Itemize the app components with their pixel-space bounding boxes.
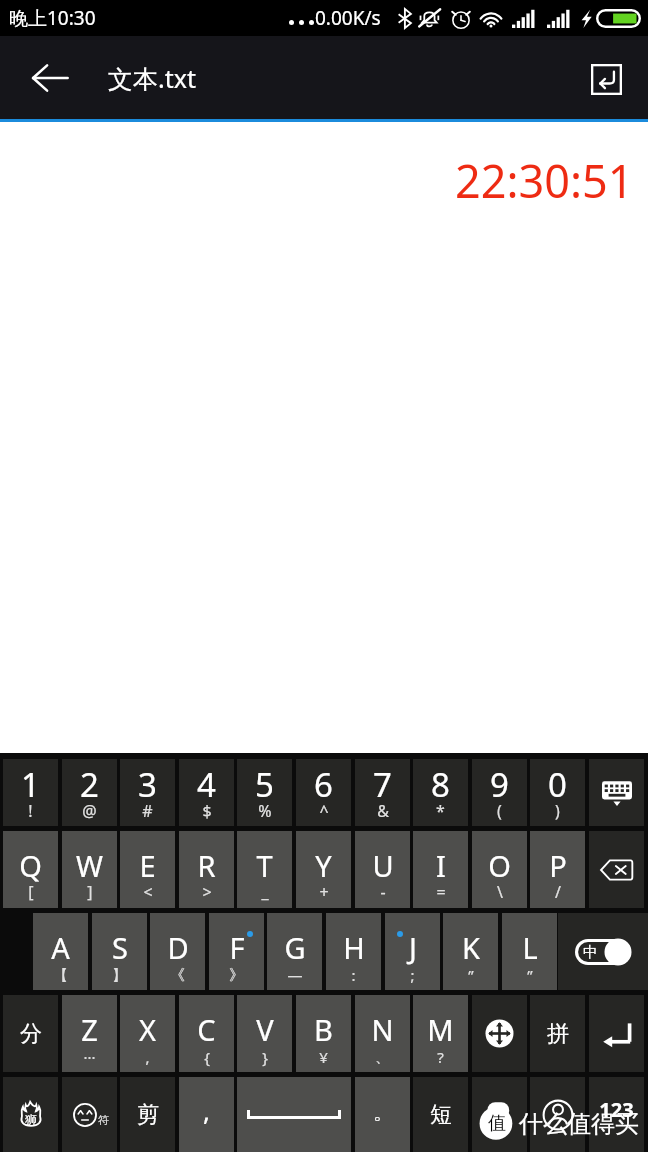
button[interactable]: 1 (3, 759, 58, 826)
button[interactable]: 分 (3, 995, 58, 1072)
staticText: 123 (599, 1096, 634, 1123)
staticText: N (371, 1010, 394, 1049)
staticText: Z (81, 1010, 98, 1049)
button[interactable]: Switch language (558, 913, 648, 990)
staticText: & (377, 800, 389, 822)
staticText: , (145, 1047, 150, 1067)
button[interactable]: Z (62, 995, 117, 1072)
button[interactable]: F (209, 913, 264, 990)
button[interactable]: 123 (589, 1077, 644, 1152)
staticText: : (351, 965, 356, 985)
button[interactable]: Emoji (62, 1077, 117, 1152)
button[interactable]: S (92, 913, 147, 990)
staticText: 3 (138, 762, 157, 807)
button[interactable]: O (472, 831, 527, 908)
staticText: 中 (583, 943, 598, 962)
staticText: ] (87, 881, 93, 903)
staticText: , (203, 1093, 210, 1128)
button[interactable]: Q (3, 831, 58, 908)
button[interactable]: Move cursor (472, 995, 527, 1072)
staticText: B (314, 1010, 333, 1049)
staticText: O (488, 846, 511, 885)
button[interactable]: U (355, 831, 410, 908)
button[interactable]: T (237, 831, 292, 908)
button[interactable]: Enter (589, 995, 644, 1072)
staticText: % (258, 800, 272, 822)
staticText: > (202, 881, 212, 903)
button[interactable]: N (355, 995, 410, 1072)
button[interactable] (472, 1077, 527, 1152)
button[interactable]: K (443, 913, 498, 990)
staticText: 剪 (137, 1101, 159, 1129)
staticText: 狮 (25, 1112, 37, 1127)
staticText: Q (19, 846, 42, 885)
staticText: { (204, 1047, 210, 1067)
staticText: 2 (80, 762, 99, 807)
button[interactable]: 3 (120, 759, 175, 826)
button[interactable]: 6 (296, 759, 351, 826)
button[interactable]: Theme (3, 1077, 58, 1152)
button[interactable]: J (385, 913, 440, 990)
button[interactable]: 5 (237, 759, 292, 826)
button[interactable]: I (413, 831, 468, 908)
button[interactable]: Delete (589, 831, 644, 908)
button[interactable]: C (179, 995, 234, 1072)
staticText: 】 (112, 966, 127, 985)
button[interactable]: H (326, 913, 381, 990)
staticText: + (319, 881, 329, 903)
button[interactable]: V (237, 995, 292, 1072)
button[interactable]: W (62, 831, 117, 908)
button[interactable]: A (33, 913, 88, 990)
button[interactable]: Space (237, 1077, 351, 1152)
staticText: 》 (229, 966, 244, 985)
button[interactable]: E (120, 831, 175, 908)
button[interactable]: , (179, 1077, 234, 1152)
staticText: T (256, 846, 273, 885)
staticText: D (167, 928, 189, 967)
button[interactable]: M (413, 995, 468, 1072)
button[interactable]: Contacts (530, 1077, 585, 1152)
staticText: P (549, 846, 567, 885)
button[interactable]: L (502, 913, 557, 990)
button[interactable]: 。 (355, 1077, 410, 1152)
button[interactable]: 0 (530, 759, 585, 826)
staticText: 8 (431, 762, 450, 807)
staticText: — (287, 965, 303, 985)
button[interactable]: 2 (62, 759, 117, 826)
button[interactable]: 短 (413, 1077, 468, 1152)
button[interactable]: Enter (575, 48, 637, 110)
button[interactable]: 剪 (120, 1077, 175, 1152)
button[interactable]: Y (296, 831, 351, 908)
button[interactable]: B (296, 995, 351, 1072)
button[interactable]: Hide keyboard (589, 759, 644, 826)
staticText: R (197, 846, 216, 885)
button[interactable]: 7 (355, 759, 410, 826)
staticText: * (436, 800, 445, 822)
staticText: X (139, 1010, 156, 1049)
staticText: 《 (170, 966, 185, 985)
staticText: = (436, 881, 446, 903)
staticText: ( (497, 800, 502, 822)
staticText: K (462, 928, 480, 967)
button[interactable]: G (267, 913, 322, 990)
button[interactable]: D (150, 913, 205, 990)
button[interactable]: R (179, 831, 234, 908)
staticText: ) (555, 800, 560, 822)
button[interactable]: P (530, 831, 585, 908)
staticText: / (555, 881, 561, 903)
button[interactable]: Back (14, 36, 86, 119)
staticText: 9 (490, 762, 509, 807)
button[interactable]: 8 (413, 759, 468, 826)
staticText: 7 (373, 762, 392, 807)
button[interactable]: 9 (472, 759, 527, 826)
staticText: 符 (98, 1113, 109, 1127)
staticText: E (139, 846, 156, 885)
staticText: 分 (20, 1020, 42, 1048)
staticText: L (522, 928, 538, 967)
button[interactable]: X (120, 995, 175, 1072)
button[interactable]: 拼 (530, 995, 585, 1072)
button[interactable]: 4 (179, 759, 234, 826)
staticText: ? (437, 1047, 444, 1067)
staticText: _ (261, 881, 269, 903)
staticText: $ (202, 800, 212, 822)
